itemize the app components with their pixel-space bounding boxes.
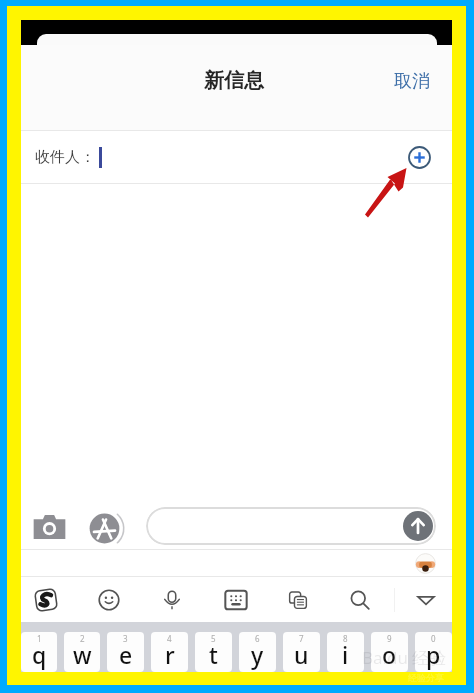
- button[interactable]: Sticker: [415, 553, 436, 574]
- button[interactable]: Camera: [33, 515, 66, 539]
- button[interactable]: App Store: [89, 513, 120, 544]
- staticText: i: [342, 639, 349, 670]
- button[interactable]: 8: [327, 632, 364, 672]
- button[interactable]: Add recipient: [408, 146, 431, 169]
- staticText: y: [251, 639, 264, 670]
- staticText: 3: [123, 633, 128, 644]
- button[interactable]: 6: [239, 632, 276, 672]
- staticText: 6: [255, 633, 260, 644]
- button[interactable]: Search: [349, 589, 371, 611]
- other: Send: [403, 511, 433, 541]
- button[interactable]: 2: [64, 632, 100, 672]
- staticText: u: [294, 639, 309, 670]
- staticText: 经验分享: [408, 672, 444, 683]
- button[interactable]: 1: [21, 632, 57, 672]
- button[interactable]: Emoji: [98, 589, 120, 611]
- staticText: 7: [299, 633, 304, 644]
- staticText: t: [209, 639, 218, 670]
- staticText: 新信息: [204, 68, 264, 93]
- staticText: w: [73, 639, 92, 670]
- staticText: e: [119, 639, 133, 670]
- button[interactable]: 取消: [394, 70, 430, 93]
- staticText: q: [32, 639, 47, 670]
- staticText: 9: [387, 633, 392, 644]
- staticText: 取消: [394, 70, 430, 93]
- staticText: 8: [343, 633, 348, 644]
- staticText: 5: [211, 633, 216, 644]
- staticText: p: [426, 639, 441, 670]
- staticText: 0: [431, 633, 436, 644]
- staticText: Baidu 经验: [362, 646, 447, 669]
- button[interactable]: Sogou input: [32, 586, 60, 614]
- staticText: o: [382, 639, 397, 670]
- button[interactable]: Send: [146, 507, 436, 545]
- button[interactable]: Clipboard: [287, 589, 309, 611]
- button[interactable]: 3: [107, 632, 144, 672]
- button[interactable]: Keyboard: [225, 589, 247, 611]
- button[interactable]: 9: [371, 632, 408, 672]
- button[interactable]: Hide keyboard: [415, 589, 437, 611]
- staticText: r: [165, 639, 175, 670]
- staticText: 2: [80, 633, 85, 644]
- button[interactable]: 7: [283, 632, 320, 672]
- button[interactable]: 5: [195, 632, 232, 672]
- button[interactable]: 4: [151, 632, 188, 672]
- button[interactable]: 0: [415, 632, 452, 672]
- staticText: 收件人：: [35, 148, 95, 167]
- staticText: 4: [167, 633, 172, 644]
- button[interactable]: Voice input: [161, 589, 183, 611]
- staticText: 1: [37, 633, 42, 644]
